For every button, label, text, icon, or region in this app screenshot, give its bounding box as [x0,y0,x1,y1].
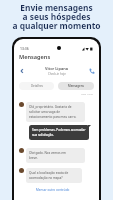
staticText: Envie mensagens a seus hóspedes a qualqu… [12,2,101,32]
staticText: Check-in hoje [48,72,66,76]
staticText: Qual a localização exata de acomodação n… [29,171,79,180]
staticText: Hoje 13:32 [81,92,93,95]
staticText: Sem problemas. Podemos acomodar sua soli… [32,128,86,137]
staticText: Detalhes [31,84,43,88]
button[interactable]: Mensagens [58,82,94,90]
button[interactable]: Back [17,66,26,75]
staticText: Mensagens [68,84,84,88]
staticText: Vitor Lipana [45,66,68,71]
staticText: 13:36 [20,46,29,51]
button[interactable]: Call [87,66,96,75]
staticText: Mensagens [19,53,51,61]
staticText: Olá, proprietário. Gostaria de solicitar… [29,105,82,119]
staticText: Obrigado. Nos vemos em breve. [29,151,66,160]
staticText: Mensar outro conteúdo [36,188,70,192]
button[interactable]: Detalhes [19,82,54,90]
